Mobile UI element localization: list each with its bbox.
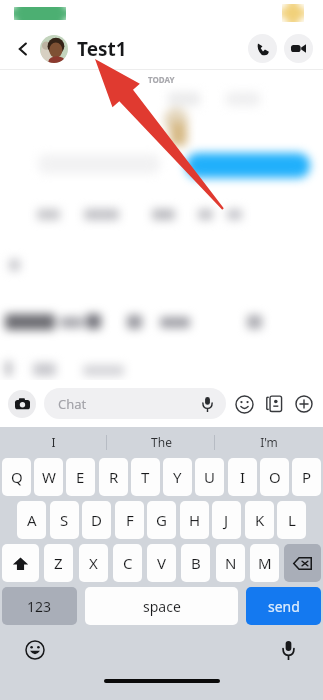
staticText: H xyxy=(189,510,201,530)
button[interactable]: Voice note xyxy=(197,394,217,414)
button[interactable]: Stickers xyxy=(233,393,255,415)
staticText: F xyxy=(126,510,134,530)
button[interactable]: I xyxy=(228,458,257,496)
staticText: O xyxy=(269,467,281,487)
button[interactable]: Back xyxy=(10,36,36,62)
button[interactable]: O xyxy=(260,458,289,496)
button[interactable]: W xyxy=(34,458,63,496)
staticText: 123 xyxy=(27,597,52,616)
button[interactable]: send xyxy=(246,587,321,625)
staticText: TODAY xyxy=(148,74,175,85)
staticText: Y xyxy=(173,467,182,487)
staticText: U xyxy=(204,467,215,487)
button[interactable]: H xyxy=(180,501,209,539)
staticText: E xyxy=(76,467,85,487)
button[interactable]: D xyxy=(82,501,111,539)
button[interactable]: Dictate xyxy=(275,637,301,663)
button[interactable]: S xyxy=(50,501,79,539)
button[interactable]: Z xyxy=(44,544,73,582)
staticText: I xyxy=(240,467,246,487)
staticText: L xyxy=(288,510,296,530)
button[interactable]: U xyxy=(195,458,224,496)
button[interactable]: Shift xyxy=(2,544,39,582)
button[interactable]: N xyxy=(216,544,245,582)
button[interactable]: 123 xyxy=(2,587,77,625)
button[interactable]: Q xyxy=(2,458,31,496)
button[interactable]: V xyxy=(147,544,176,582)
staticText: Q xyxy=(11,467,23,487)
button[interactable]: G xyxy=(147,501,176,539)
button[interactable]: B xyxy=(181,544,210,582)
staticText: R xyxy=(109,467,119,487)
staticText: P xyxy=(302,467,312,487)
button[interactable]: space xyxy=(85,587,238,625)
button[interactable]: The xyxy=(107,434,215,450)
button[interactable]: L xyxy=(277,501,306,539)
button[interactable]: J xyxy=(212,501,241,539)
staticText: M xyxy=(258,553,272,573)
button[interactable]: T xyxy=(131,458,160,496)
button[interactable]: P xyxy=(292,458,321,496)
button[interactable]: Voice call xyxy=(248,34,277,63)
staticText: J xyxy=(224,510,229,530)
staticText: Chat xyxy=(58,395,87,413)
staticText: V xyxy=(157,553,167,573)
button[interactable]: Backspace xyxy=(284,544,321,582)
button[interactable]: F xyxy=(115,501,144,539)
staticText: X xyxy=(89,553,98,573)
button[interactable]: X xyxy=(79,544,108,582)
button[interactable]: K xyxy=(245,501,274,539)
staticText: G xyxy=(156,510,167,530)
button[interactable]: Y xyxy=(163,458,192,496)
staticText: K xyxy=(255,510,265,530)
staticText: D xyxy=(91,510,102,530)
staticText: B xyxy=(191,553,201,573)
staticText: space xyxy=(143,597,181,616)
staticText: T xyxy=(141,467,150,487)
button[interactable]: I'm xyxy=(215,434,323,450)
staticText: A xyxy=(27,510,37,530)
button[interactable]: M xyxy=(250,544,279,582)
button[interactable]: More options xyxy=(293,393,315,415)
button[interactable]: A xyxy=(17,501,46,539)
staticText: I xyxy=(51,434,56,450)
button[interactable]: E xyxy=(66,458,95,496)
staticText: Z xyxy=(54,553,63,573)
staticText: The xyxy=(151,434,172,450)
staticText: I'm xyxy=(260,434,278,450)
button[interactable]: Emoji xyxy=(22,637,48,663)
button[interactable]: R xyxy=(99,458,128,496)
staticText: N xyxy=(225,553,237,573)
button[interactable]: Profile picture xyxy=(40,35,68,63)
button[interactable]: Bitmoji xyxy=(263,393,285,415)
button[interactable]: Video call xyxy=(284,34,313,63)
staticText: send xyxy=(268,597,300,616)
staticText: Test1 xyxy=(77,36,127,62)
staticText: C xyxy=(123,553,133,573)
button[interactable]: Camera xyxy=(8,390,36,418)
button[interactable]: Chat xyxy=(44,388,226,419)
button[interactable]: Test1 xyxy=(77,36,127,62)
button[interactable]: C xyxy=(113,544,142,582)
button[interactable]: I xyxy=(0,434,107,450)
staticText: S xyxy=(60,510,69,530)
staticText: W xyxy=(42,467,56,487)
